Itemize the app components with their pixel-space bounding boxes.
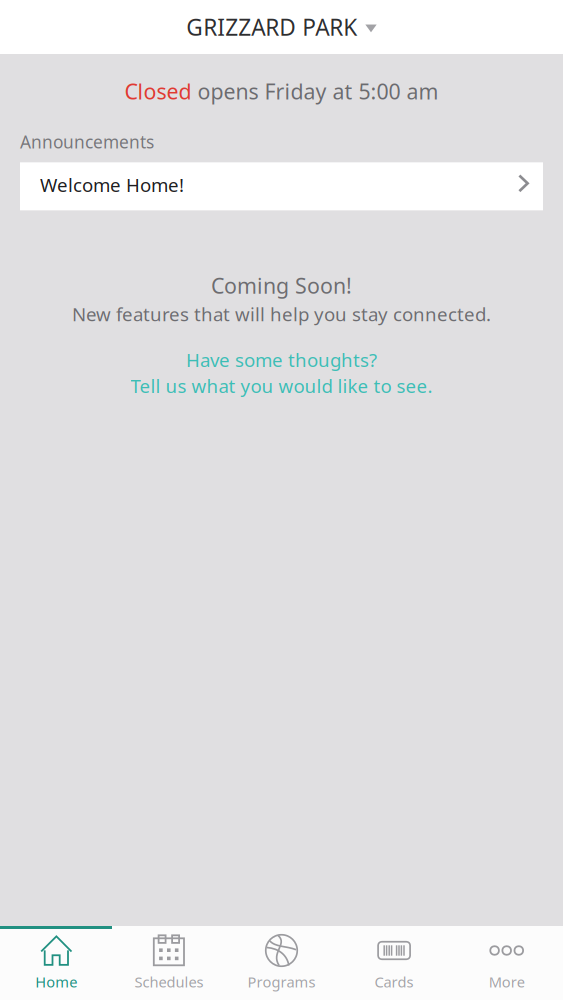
button[interactable]: Schedules	[113, 929, 225, 1000]
staticText: Announcements	[20, 130, 154, 153]
button[interactable]: Cards	[338, 929, 450, 1000]
button[interactable]: Home	[0, 929, 113, 1000]
button[interactable]: Welcome Home!	[0, 162, 563, 210]
staticText: More	[489, 972, 525, 991]
staticText: opens Friday at 5:00 am	[191, 77, 438, 105]
button[interactable]: More	[450, 929, 563, 1000]
staticText: Coming Soon!	[211, 271, 352, 300]
staticText: Closed	[124, 77, 191, 105]
staticText: Cards	[375, 972, 414, 991]
button[interactable]: Have some thoughts?	[0, 326, 563, 398]
staticText: New features that will help you stay con…	[72, 302, 491, 326]
staticText: Programs	[247, 972, 315, 991]
staticText: Home	[35, 972, 77, 991]
staticText: Tell us what you would like to see.	[130, 373, 432, 398]
staticText: Schedules	[134, 972, 203, 991]
button[interactable]: Programs	[225, 929, 338, 1000]
staticText: GRIZZARD PARK	[186, 12, 357, 42]
staticText: Have some thoughts?	[186, 347, 377, 372]
button[interactable]: GRIZZARD PARK	[0, 0, 563, 54]
staticText: Welcome Home!	[40, 172, 184, 197]
